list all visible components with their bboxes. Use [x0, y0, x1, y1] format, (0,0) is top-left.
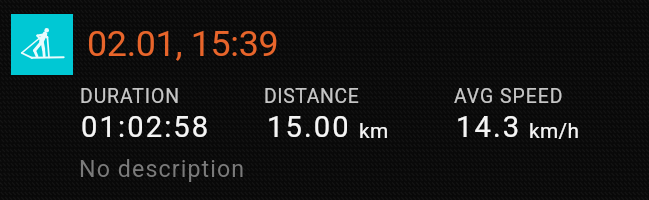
staticText: 14.3	[456, 110, 522, 144]
staticText: DISTANCE	[264, 85, 360, 108]
staticText: 15.00	[267, 110, 351, 144]
staticText: 01:02:58	[81, 110, 211, 144]
staticText: km	[359, 119, 389, 143]
staticText: AVG SPEED	[454, 85, 564, 108]
staticText: km/h	[529, 119, 580, 143]
staticText: No description	[79, 155, 246, 182]
staticText: DURATION	[80, 85, 180, 108]
staticText: 02.01, 15:39	[87, 23, 279, 65]
button[interactable]: Cross country skiing activity	[11, 14, 73, 75]
